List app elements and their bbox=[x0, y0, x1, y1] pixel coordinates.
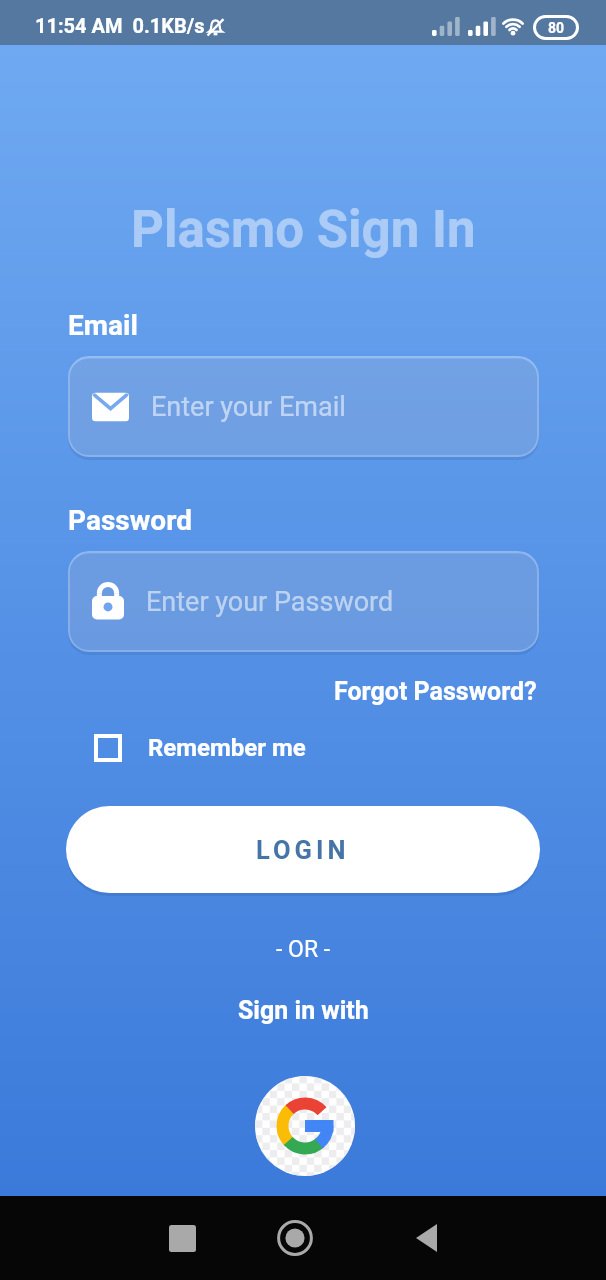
staticText: LOGIN bbox=[256, 835, 350, 865]
staticText: Password bbox=[68, 504, 192, 537]
staticText: Enter your Password bbox=[146, 586, 394, 618]
staticText: - OR - bbox=[276, 936, 331, 963]
staticText: Sign in with bbox=[238, 996, 369, 1025]
button[interactable]: Remember me bbox=[94, 734, 306, 762]
staticText: Remember me bbox=[148, 734, 306, 762]
button[interactable]: LOGIN bbox=[66, 806, 540, 893]
staticText: 80 bbox=[548, 20, 565, 36]
button[interactable]: Enter your Email bbox=[68, 356, 539, 457]
button[interactable] bbox=[398, 1210, 454, 1266]
button[interactable]: Enter your Password bbox=[68, 551, 539, 652]
staticText: Email bbox=[68, 309, 138, 342]
button[interactable] bbox=[154, 1210, 210, 1266]
button[interactable] bbox=[266, 1209, 324, 1267]
staticText: Plasmo Sign In bbox=[131, 200, 476, 260]
staticText: 11:54 AM 0.1KB/s bbox=[35, 14, 205, 37]
staticText: Enter your Email bbox=[151, 391, 346, 423]
button[interactable]: Forgot Password? bbox=[334, 677, 537, 706]
button[interactable] bbox=[255, 1076, 355, 1176]
